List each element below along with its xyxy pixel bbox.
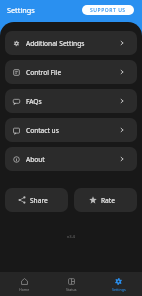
button[interactable]: Status — [48, 272, 95, 296]
button[interactable]: Home — [0, 272, 48, 296]
staticText: Share — [30, 196, 48, 205]
staticText: SUPPORT US — [90, 7, 126, 14]
staticText: Rate — [101, 196, 115, 205]
staticText: FAQs — [26, 97, 42, 106]
staticText: Settings — [7, 5, 35, 15]
staticText: Control File — [26, 68, 62, 77]
staticText: Home — [19, 287, 30, 292]
button[interactable]: Control File — [5, 60, 137, 84]
staticText: Status — [66, 287, 77, 292]
staticText: About — [26, 155, 45, 164]
staticText: v3.4 — [0, 234, 142, 240]
button[interactable]: Rate — [74, 188, 137, 212]
button[interactable]: Settings — [95, 272, 142, 296]
button[interactable]: About — [5, 147, 137, 171]
staticText: Contact us — [26, 126, 59, 135]
staticText: Additional Settings — [26, 39, 85, 48]
button[interactable]: FAQs — [5, 89, 137, 113]
staticText: Settings — [112, 287, 126, 292]
button[interactable]: SUPPORT US — [82, 5, 134, 15]
button[interactable]: Additional Settings — [5, 31, 137, 55]
button[interactable]: Share — [5, 188, 68, 212]
button[interactable]: Contact us — [5, 118, 137, 142]
